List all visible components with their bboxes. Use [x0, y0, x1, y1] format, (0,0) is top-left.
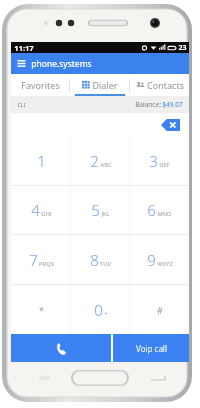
- button[interactable]: Favorites: [11, 74, 69, 96]
- staticText: 4: [31, 200, 40, 220]
- button[interactable]: Open navigation menu: [11, 53, 189, 74]
- staticText: WXYZ: [157, 260, 173, 268]
- staticText: 6: [147, 200, 156, 220]
- button[interactable]: Voip call: [113, 334, 189, 362]
- staticText: 2: [90, 151, 99, 171]
- staticText: #: [157, 304, 163, 316]
- staticText: GHI: [41, 210, 52, 218]
- button[interactable]: 0: [71, 285, 130, 334]
- staticText: Balance:: [134, 100, 162, 109]
- staticText: Dialer: [92, 79, 118, 91]
- staticText: 7: [29, 250, 38, 270]
- staticText: CLI: [17, 101, 26, 108]
- button[interactable]: 1: [11, 137, 71, 185]
- button[interactable]: Call: [11, 334, 111, 362]
- staticText: JKL: [101, 210, 110, 218]
- staticText: *: [39, 304, 44, 316]
- staticText: 0: [94, 300, 103, 320]
- staticText: 11:17: [14, 43, 34, 53]
- button[interactable]: 8: [71, 235, 130, 284]
- staticText: ABC: [100, 161, 112, 169]
- staticText: MNO: [157, 210, 172, 218]
- staticText: PRQS: [39, 260, 54, 268]
- staticText: DEF: [159, 161, 170, 169]
- button[interactable]: 2: [71, 137, 130, 185]
- staticText: Favorites: [21, 79, 60, 91]
- staticText: +: [104, 310, 108, 318]
- staticText: Contacts: [147, 79, 184, 91]
- staticText: $49.07: [162, 100, 183, 109]
- staticText: Voip call: [136, 343, 167, 354]
- button[interactable]: Contacts: [130, 74, 189, 96]
- staticText: 8: [90, 250, 99, 270]
- button[interactable]: Backspace: [161, 119, 180, 131]
- staticText: 3: [149, 151, 158, 171]
- button[interactable]: 7: [11, 235, 71, 284]
- staticText: 1: [37, 151, 46, 171]
- button[interactable]: #: [130, 285, 189, 334]
- staticText: 23: [178, 43, 187, 53]
- button[interactable]: 4: [11, 186, 71, 234]
- button[interactable]: *: [11, 285, 71, 334]
- staticText: 9: [147, 250, 156, 270]
- button[interactable]: 3: [130, 137, 189, 185]
- button[interactable]: Dialer: [70, 74, 129, 96]
- button[interactable]: Open navigation menu: [11, 53, 31, 74]
- button[interactable]: 6: [130, 186, 189, 234]
- staticText: TUV: [100, 260, 111, 268]
- button[interactable]: 9: [130, 235, 189, 284]
- staticText: 5: [91, 200, 100, 220]
- staticText: phone.systems: [31, 58, 92, 70]
- button[interactable]: 5: [71, 186, 130, 234]
